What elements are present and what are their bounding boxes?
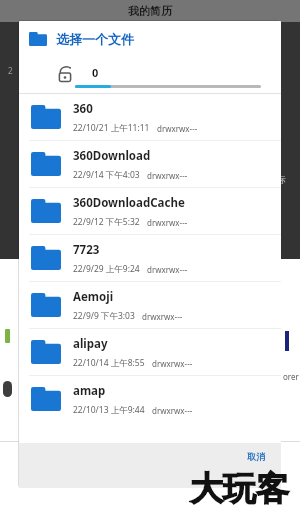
staticText: 我的简历	[128, 4, 172, 18]
staticText: orer	[283, 371, 299, 382]
staticText: 22/10/13 上午9:44	[73, 404, 145, 416]
staticText: 7723	[73, 242, 100, 258]
staticText: drwxrwx---	[147, 170, 188, 181]
staticText: 块标	[268, 174, 286, 185]
button[interactable]: amap	[19, 376, 281, 422]
staticText: 2	[8, 65, 13, 76]
staticText: 22/9/12 下午5:32	[73, 216, 140, 228]
staticText: drwxrwx---	[152, 358, 193, 369]
staticText: 22/10/21 上午11:11	[73, 122, 150, 134]
button[interactable]: 360Download	[19, 141, 281, 187]
staticText: 360	[73, 101, 93, 117]
button[interactable]: 360	[19, 94, 281, 140]
staticText: drwxrwx---	[152, 405, 193, 416]
button[interactable]: Aemoji	[19, 282, 281, 328]
staticText: 360DownloadCache	[73, 195, 185, 211]
button[interactable]: 取消	[239, 448, 273, 465]
staticText: 选择一个文件	[56, 31, 134, 47]
staticText: Aemoji	[73, 289, 114, 305]
staticText: amap	[73, 383, 106, 399]
staticText: 0	[92, 65, 99, 80]
staticText: 大玩客	[190, 468, 289, 510]
staticText: 360Download	[73, 148, 151, 164]
staticText: drwxrwx---	[147, 217, 188, 228]
staticText: 22/9/29 上午9:24	[73, 263, 140, 275]
staticText: drwxrwx---	[142, 311, 183, 322]
staticText: drwxrwx---	[157, 123, 198, 134]
button[interactable]: 7723	[19, 235, 281, 281]
staticText: 22/9/9 下午3:03	[73, 310, 135, 322]
button[interactable]: alipay	[19, 329, 281, 375]
staticText: 22/10/14 上午8:55	[73, 357, 145, 369]
button[interactable]: 360DownloadCache	[19, 188, 281, 234]
staticText: 取消	[247, 451, 265, 462]
staticText: alipay	[73, 336, 108, 352]
staticText: 22/9/14 下午4:03	[73, 169, 140, 181]
staticText: drwxrwx---	[147, 264, 188, 275]
